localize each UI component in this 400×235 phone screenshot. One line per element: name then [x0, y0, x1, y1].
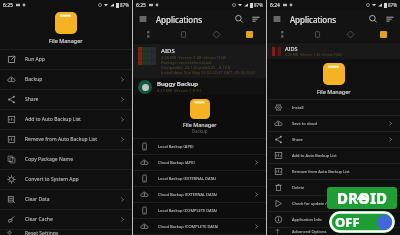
staticText: Clear Data — [25, 196, 119, 203]
button[interactable]: Remove from Auto Backup List — [267, 164, 400, 179]
staticText: Convert to System App — [25, 176, 126, 183]
button[interactable]: Delete — [267, 180, 400, 195]
staticText: Buggy Backup — [157, 80, 198, 88]
button[interactable]: Run App — [0, 50, 132, 69]
staticText: Advanced Options — [292, 229, 394, 234]
button[interactable]: Backup — [0, 70, 132, 89]
staticText: File Manager — [317, 88, 351, 95]
staticText: 3.26 MB Version 1.40 release (140) — [285, 52, 343, 57]
button[interactable]: Buggy Backup — [133, 80, 266, 94]
button[interactable]: Filter 0 — [133, 28, 167, 41]
staticText: Save to cloud — [292, 121, 387, 126]
staticText: Cloud Backup (APK) — [158, 160, 253, 165]
button[interactable]: Filter 0 — [267, 28, 301, 41]
staticText: Add to Auto Backup List — [25, 116, 119, 123]
button[interactable]: Filter 2 — [334, 28, 367, 41]
staticText: 87% — [254, 2, 263, 8]
button[interactable]: Search — [368, 14, 378, 24]
button[interactable]: Filter 2 — [200, 28, 233, 41]
staticText: 87% — [388, 2, 397, 8]
staticText: Share — [25, 96, 119, 103]
button[interactable]: Check for update / Open in Google Play — [267, 196, 400, 211]
staticText: Reset Settings — [25, 230, 126, 235]
staticText: Remove from Auto Backup List — [292, 169, 394, 174]
button[interactable]: Menu — [138, 14, 148, 24]
staticText: Check for update / Open in Google Play — [292, 201, 394, 206]
staticText: Local Backup (COMPLETE DATA) — [158, 208, 260, 213]
staticText: 87% — [120, 2, 129, 8]
staticText: Applications — [290, 14, 336, 25]
button[interactable]: Remove from Auto Backup List — [0, 130, 132, 149]
staticText: Backup — [25, 76, 119, 83]
staticText: Install — [292, 105, 394, 110]
staticText: Share — [292, 137, 387, 142]
staticText: 3.26 MB Version 1.40 release (140) — [161, 55, 227, 60]
staticText: Install date: Sun May 03 02:22:31 GMT+05… — [161, 70, 256, 75]
staticText: DROID — [337, 188, 388, 208]
staticText: 4.29 MB Version 1.8 (5) — [157, 88, 201, 93]
button[interactable]: AIDS — [133, 44, 266, 78]
staticText: Application Info — [292, 217, 394, 222]
staticText: Add to Auto Backup List — [292, 153, 394, 158]
staticText: AIDS — [285, 45, 298, 52]
button[interactable]: Local Backup (COMPLETE DATA) — [133, 203, 266, 218]
staticText: AIDS — [161, 47, 175, 55]
button[interactable]: Install — [267, 100, 400, 115]
button[interactable]: Filter 1 — [301, 28, 334, 41]
button[interactable]: Add to Auto Backup List — [267, 148, 400, 163]
button[interactable]: Save to cloud — [267, 116, 400, 131]
button[interactable]: Menu — [272, 14, 282, 24]
button[interactable]: Cloud Backup (COMPLETE DATA) — [133, 219, 266, 234]
staticText: Package: com.technical.aid — [161, 60, 212, 65]
staticText: 6:24 — [270, 2, 280, 9]
button[interactable]: Application Info — [267, 212, 400, 227]
button[interactable]: AIDS — [267, 43, 400, 59]
staticText: File Manager — [183, 121, 217, 128]
staticText: Applications — [156, 14, 202, 25]
staticText: OFF — [335, 213, 360, 231]
button[interactable]: Local Backup (EXTERNAL DATA) — [133, 171, 266, 186]
staticText: Run App — [25, 56, 126, 63]
button[interactable]: Share — [267, 132, 400, 147]
staticText: Local Backup (EXTERNAL DATA) — [158, 176, 260, 181]
staticText: Remove from Auto Backup List — [25, 136, 119, 143]
staticText: Cloud Backup (COMPLETE DATA) — [158, 224, 253, 229]
button[interactable]: Sort — [385, 14, 395, 24]
button[interactable]: Cloud Backup (EXTERNAL DATA) — [133, 187, 266, 202]
staticText: Compatible: 23.1.0/arm64-25 - 8.13.9 — [161, 65, 231, 70]
staticText: Clear Cache — [25, 216, 119, 223]
button[interactable]: Sort — [251, 14, 261, 24]
button[interactable]: Convert to System App — [0, 170, 132, 189]
button[interactable]: Advanced Options — [267, 228, 400, 235]
button[interactable]: Share — [0, 90, 132, 109]
button[interactable]: Copy Package Name — [0, 150, 132, 169]
button[interactable]: Clear Cache — [0, 210, 132, 229]
button[interactable]: Local Backup (APK) — [133, 139, 266, 154]
staticText: Backup — [192, 128, 208, 134]
button[interactable]: Filter 1 — [167, 28, 200, 41]
button[interactable]: Search — [234, 14, 244, 24]
staticText: Local Backup (APK) — [158, 144, 260, 149]
staticText: 6:25 — [3, 2, 13, 9]
staticText: File Manager — [49, 37, 83, 44]
button[interactable]: Clear Data — [0, 190, 132, 209]
staticText: 6:25 — [136, 2, 146, 9]
button[interactable]: Reset Settings — [0, 230, 132, 235]
staticText: Copy Package Name — [25, 156, 126, 163]
staticText: Delete — [292, 185, 394, 190]
button[interactable]: Filter 3 — [367, 28, 400, 41]
button[interactable]: Cloud Backup (APK) — [133, 155, 266, 170]
button[interactable]: Filter 3 — [233, 28, 266, 41]
staticText: Cloud Backup (EXTERNAL DATA) — [158, 192, 253, 197]
button[interactable]: Add to Auto Backup List — [0, 110, 132, 129]
